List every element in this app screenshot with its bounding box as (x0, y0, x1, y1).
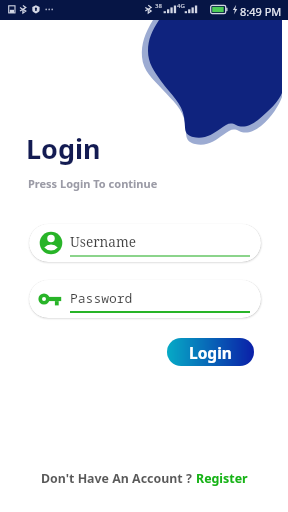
staticText: Press Login To continue (28, 176, 158, 191)
staticText: 38 (155, 2, 162, 10)
staticText: Password (70, 289, 133, 307)
staticText: Login (26, 130, 101, 167)
staticText: Register (196, 470, 248, 487)
other: User account (29, 224, 261, 262)
staticText: 4G (177, 2, 185, 10)
other: Password (29, 280, 261, 318)
button[interactable]: Don't Have An Account ? (41, 470, 248, 487)
button[interactable]: Login (167, 338, 254, 366)
staticText: Don't Have An Account ? (41, 470, 196, 487)
button[interactable]: User account (29, 224, 261, 262)
button[interactable]: Password (29, 280, 261, 318)
staticText: 8:49 PM (240, 4, 282, 19)
staticText: Username (70, 232, 137, 251)
staticText: Login (189, 342, 232, 363)
